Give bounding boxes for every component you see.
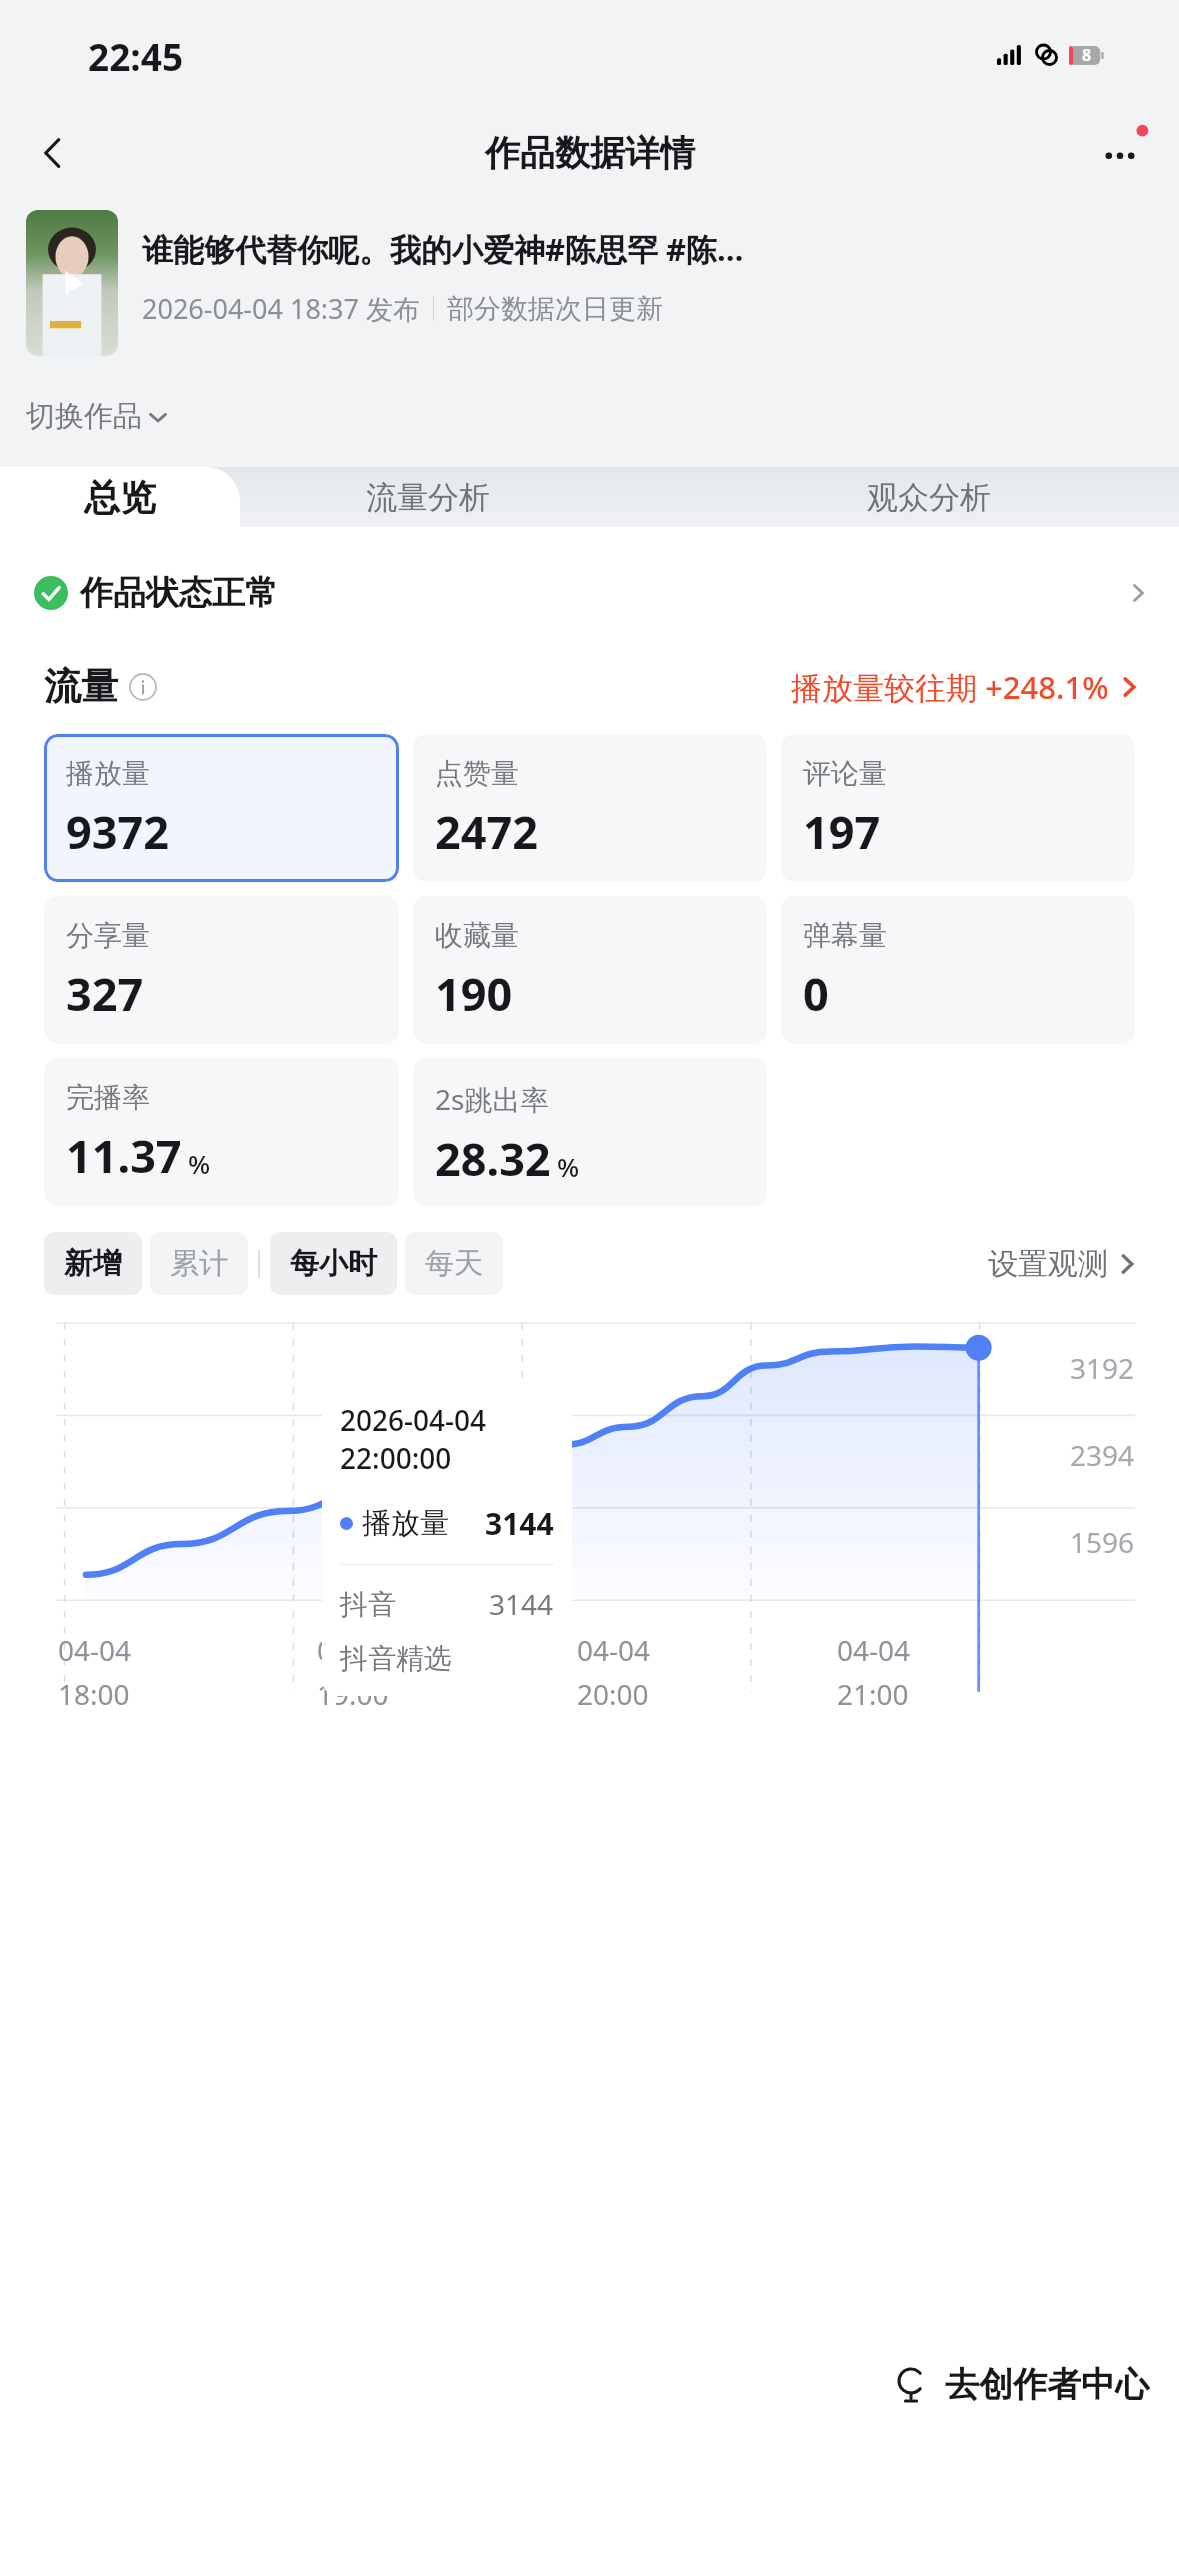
staticText: 2394: [1070, 1436, 1135, 1474]
staticText: 播放量: [66, 756, 150, 791]
staticText: 04-04: [317, 1631, 391, 1669]
staticText: 每小时: [290, 1245, 377, 1282]
button[interactable]: 设置观测: [988, 1245, 1139, 1283]
button[interactable]: 去创作者中心: [857, 2340, 1179, 2428]
staticText: 18:00: [58, 1675, 130, 1713]
staticText: 3144: [485, 1503, 554, 1544]
staticText: 去创作者中心: [945, 2363, 1149, 2406]
staticText: 9372: [66, 801, 169, 862]
staticText: 部分数据次日更新: [447, 292, 663, 326]
staticText: %: [557, 1149, 580, 1184]
staticText: %: [188, 1146, 211, 1181]
staticText: 0: [803, 963, 829, 1024]
staticText: 分享量: [66, 918, 150, 953]
staticText: 流量: [44, 663, 118, 710]
staticText: 20:00: [577, 1675, 649, 1713]
button[interactable]: 点赞量: [413, 734, 767, 882]
button[interactable]: 每小时: [270, 1232, 397, 1295]
staticText: 2472: [435, 801, 538, 862]
staticText: 197: [803, 801, 881, 862]
staticText: 设置观测: [988, 1245, 1108, 1283]
staticText: 观众分析: [867, 478, 991, 517]
button[interactable]: 流量分析: [178, 467, 678, 527]
button[interactable]: Info: [128, 672, 158, 702]
button[interactable]: 弹幕量: [781, 896, 1135, 1044]
button[interactable]: 观众分析: [678, 467, 1179, 527]
staticText: 04-04: [577, 1631, 651, 1669]
staticText: 2026-04-04 22:00:00: [340, 1401, 554, 1477]
staticText: 04-04: [837, 1631, 911, 1669]
staticText: 收藏量: [435, 918, 519, 953]
button[interactable]: 分享量: [44, 896, 399, 1044]
staticText: 作品状态正常: [80, 572, 278, 614]
staticText: 2s跳出率: [435, 1080, 549, 1118]
button[interactable]: 完播率: [44, 1058, 399, 1206]
staticText: 2026-04-04 18:37 发布: [142, 290, 420, 327]
staticText: 累计: [170, 1245, 228, 1282]
staticText: 播放量: [362, 1505, 449, 1542]
staticText: 新增: [64, 1245, 122, 1282]
button[interactable]: 谁能够代替你呢。我的小爱神#陈思罕 #陈…: [26, 210, 1153, 356]
staticText: 19:00: [317, 1675, 389, 1713]
staticText: 1596: [1070, 1523, 1135, 1561]
staticText: 评论量: [803, 756, 887, 791]
staticText: 3192: [1070, 1349, 1135, 1387]
button[interactable]: 评论量: [781, 734, 1135, 882]
staticText: 抖音: [340, 1587, 396, 1622]
staticText: 完播率: [66, 1080, 150, 1115]
staticText: 8: [1082, 44, 1092, 66]
staticText: 21:00: [837, 1675, 909, 1713]
staticText: 切换作品: [26, 398, 142, 435]
button[interactable]: 累计: [150, 1232, 248, 1295]
button[interactable]: Back: [22, 122, 84, 184]
staticText: 11.37: [66, 1125, 182, 1186]
button[interactable]: 2s跳出率: [413, 1058, 767, 1206]
button[interactable]: 切换作品: [26, 398, 169, 435]
button[interactable]: 每天: [405, 1232, 503, 1295]
staticText: 作品数据详情: [485, 131, 695, 175]
staticText: 327: [66, 963, 144, 1024]
staticText: 每天: [425, 1245, 483, 1282]
staticText: 04-04: [58, 1631, 132, 1669]
staticText: 28.32: [435, 1128, 551, 1189]
button[interactable]: 新增: [44, 1232, 142, 1295]
staticText: 总览: [84, 475, 156, 520]
staticText: 3144: [489, 1585, 554, 1623]
button[interactable]: 播放量较往期 +248.1%: [791, 666, 1141, 708]
button[interactable]: 总览: [0, 467, 240, 527]
staticText: 22:45: [88, 31, 184, 81]
staticText: 抖音精选: [340, 1641, 452, 1676]
staticText: 点赞量: [435, 756, 519, 791]
staticText: 播放量较往期 +248.1%: [791, 666, 1109, 708]
button[interactable]: 作品状态正常: [34, 557, 1149, 629]
staticText: 谁能够代替你呢。我的小爱神#陈思罕 #陈…: [142, 228, 744, 270]
button[interactable]: 播放量: [44, 734, 399, 882]
staticText: 弹幕量: [803, 918, 887, 953]
button[interactable]: 收藏量: [413, 896, 767, 1044]
staticText: 190: [435, 963, 513, 1024]
button[interactable]: More options: [1085, 118, 1155, 188]
staticText: 流量分析: [366, 478, 490, 517]
